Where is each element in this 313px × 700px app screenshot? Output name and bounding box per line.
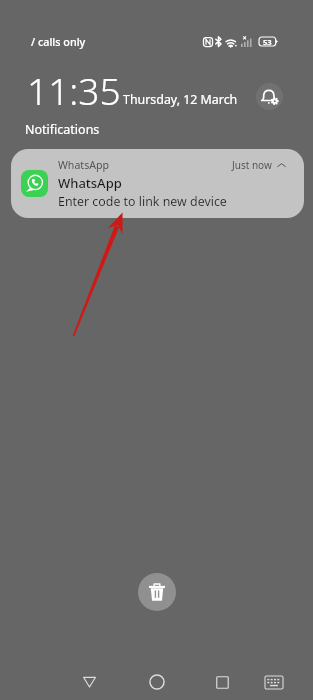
staticText: / calls only: [31, 34, 86, 49]
staticText: WhatsApp: [58, 174, 122, 192]
button[interactable]: Clear all notifications: [138, 573, 176, 611]
button[interactable]: Home: [135, 660, 179, 700]
button[interactable]: Keyboard: [252, 660, 296, 700]
button[interactable]: WhatsApp: [11, 149, 304, 218]
staticText: Enter code to link new device: [58, 193, 227, 210]
staticText: 11:35: [27, 65, 121, 115]
staticText: Thursday, 12 March: [123, 91, 238, 108]
staticText: Just now: [232, 158, 272, 172]
button[interactable]: Notification settings: [256, 83, 283, 110]
staticText: WhatsApp: [58, 158, 110, 172]
button[interactable]: Recents: [200, 660, 244, 700]
staticText: 53: [263, 37, 272, 46]
button[interactable]: Back: [67, 660, 111, 700]
staticText: Notifications: [25, 121, 100, 138]
